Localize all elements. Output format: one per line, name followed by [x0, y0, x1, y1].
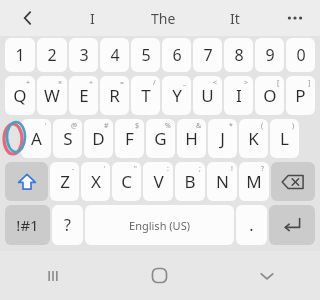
staticText: #: [104, 121, 109, 131]
button[interactable]: A: [21, 119, 51, 158]
staticText: It: [230, 9, 240, 28]
button[interactable]: The: [128, 0, 199, 36]
button[interactable]: G: [146, 119, 175, 158]
staticText: .: [249, 214, 254, 236]
button[interactable]: Q: [5, 76, 35, 115]
button[interactable]: V: [143, 162, 173, 201]
staticText: English (US): [129, 218, 190, 233]
staticText: ÷: [89, 78, 94, 88]
staticText: K: [248, 127, 259, 150]
staticText: ]: [308, 78, 311, 88]
button[interactable]: Hide keyboard: [213, 251, 320, 300]
staticText: 8: [234, 44, 244, 66]
button[interactable]: W: [37, 76, 67, 115]
staticText: Q: [13, 84, 27, 107]
button[interactable]: 1: [5, 38, 35, 72]
button[interactable]: Enter: [269, 205, 315, 245]
staticText: :: [167, 164, 169, 174]
staticText: X: [91, 170, 101, 193]
staticText: S: [63, 127, 73, 150]
staticText: ': [45, 121, 47, 131]
button[interactable]: 6: [162, 38, 191, 72]
staticText: (: [261, 121, 264, 131]
staticText: ;: [199, 164, 201, 174]
staticText: ?: [64, 214, 71, 236]
staticText: $: [135, 121, 140, 131]
button[interactable]: 9: [255, 38, 284, 72]
button[interactable]: C: [112, 162, 141, 201]
staticText: 4: [110, 44, 120, 66]
button[interactable]: .: [236, 205, 267, 245]
button[interactable]: T: [131, 76, 160, 115]
staticText: J: [220, 127, 225, 150]
staticText: V: [153, 170, 164, 193]
button[interactable]: D: [84, 119, 113, 158]
button[interactable]: U: [193, 76, 222, 115]
button[interactable]: P: [286, 76, 315, 115]
staticText: ": [134, 164, 137, 174]
button[interactable]: 7: [193, 38, 222, 72]
button[interactable]: R: [100, 76, 129, 115]
staticText: [: [277, 78, 280, 88]
staticText: 3: [79, 44, 89, 66]
button[interactable]: L: [270, 119, 299, 158]
staticText: R: [109, 84, 120, 107]
button[interactable]: 5: [131, 38, 160, 72]
button[interactable]: It: [199, 0, 270, 36]
button[interactable]: I: [224, 76, 253, 115]
staticText: W: [44, 84, 60, 107]
staticText: U: [201, 84, 214, 107]
button[interactable]: !#1: [5, 205, 50, 245]
button[interactable]: More options: [270, 0, 320, 36]
staticText: *: [229, 121, 233, 131]
button[interactable]: Home: [106, 251, 213, 300]
button[interactable]: N: [207, 162, 237, 201]
staticText: P: [295, 84, 306, 107]
button[interactable]: 4: [100, 38, 129, 72]
button[interactable]: E: [69, 76, 98, 115]
button[interactable]: O: [255, 76, 284, 115]
button[interactable]: Y: [162, 76, 191, 115]
staticText: _: [183, 78, 187, 88]
staticText: B: [184, 170, 196, 193]
button[interactable]: Backspace: [271, 162, 315, 201]
button[interactable]: 2: [37, 38, 67, 72]
staticText: D: [92, 127, 105, 150]
button[interactable]: F: [115, 119, 144, 158]
button[interactable]: 0: [286, 38, 315, 72]
staticText: @: [71, 121, 78, 131]
staticText: M: [246, 170, 262, 193]
staticText: !#1: [16, 215, 39, 235]
button[interactable]: S: [53, 119, 82, 158]
button[interactable]: Shift: [5, 162, 48, 201]
button[interactable]: Recents: [0, 251, 106, 300]
button[interactable]: Back: [0, 0, 56, 36]
button[interactable]: English (US): [85, 205, 234, 245]
staticText: /: [153, 78, 156, 88]
button[interactable]: X: [81, 162, 110, 201]
button[interactable]: 8: [224, 38, 253, 72]
staticText: 9: [265, 44, 275, 66]
staticText: N: [216, 170, 229, 193]
staticText: G: [154, 127, 167, 150]
button[interactable]: I: [56, 0, 128, 36]
button[interactable]: ?: [52, 205, 83, 245]
button[interactable]: K: [239, 119, 268, 158]
staticText: ?: [261, 164, 265, 174]
staticText: 6: [172, 44, 182, 66]
staticText: I: [236, 84, 242, 107]
button[interactable]: H: [177, 119, 206, 158]
button[interactable]: M: [239, 162, 269, 201]
staticText: &: [196, 121, 202, 131]
staticText: ×: [58, 78, 63, 88]
button[interactable]: J: [208, 119, 237, 158]
staticText: Y: [172, 84, 182, 107]
staticText: I: [90, 9, 95, 28]
staticText: +: [26, 78, 31, 88]
button[interactable]: 3: [69, 38, 98, 72]
button[interactable]: B: [175, 162, 205, 201]
button[interactable]: Z: [50, 162, 79, 201]
staticText: H: [185, 127, 198, 150]
staticText: >: [244, 78, 249, 88]
staticText: 2: [47, 44, 57, 66]
